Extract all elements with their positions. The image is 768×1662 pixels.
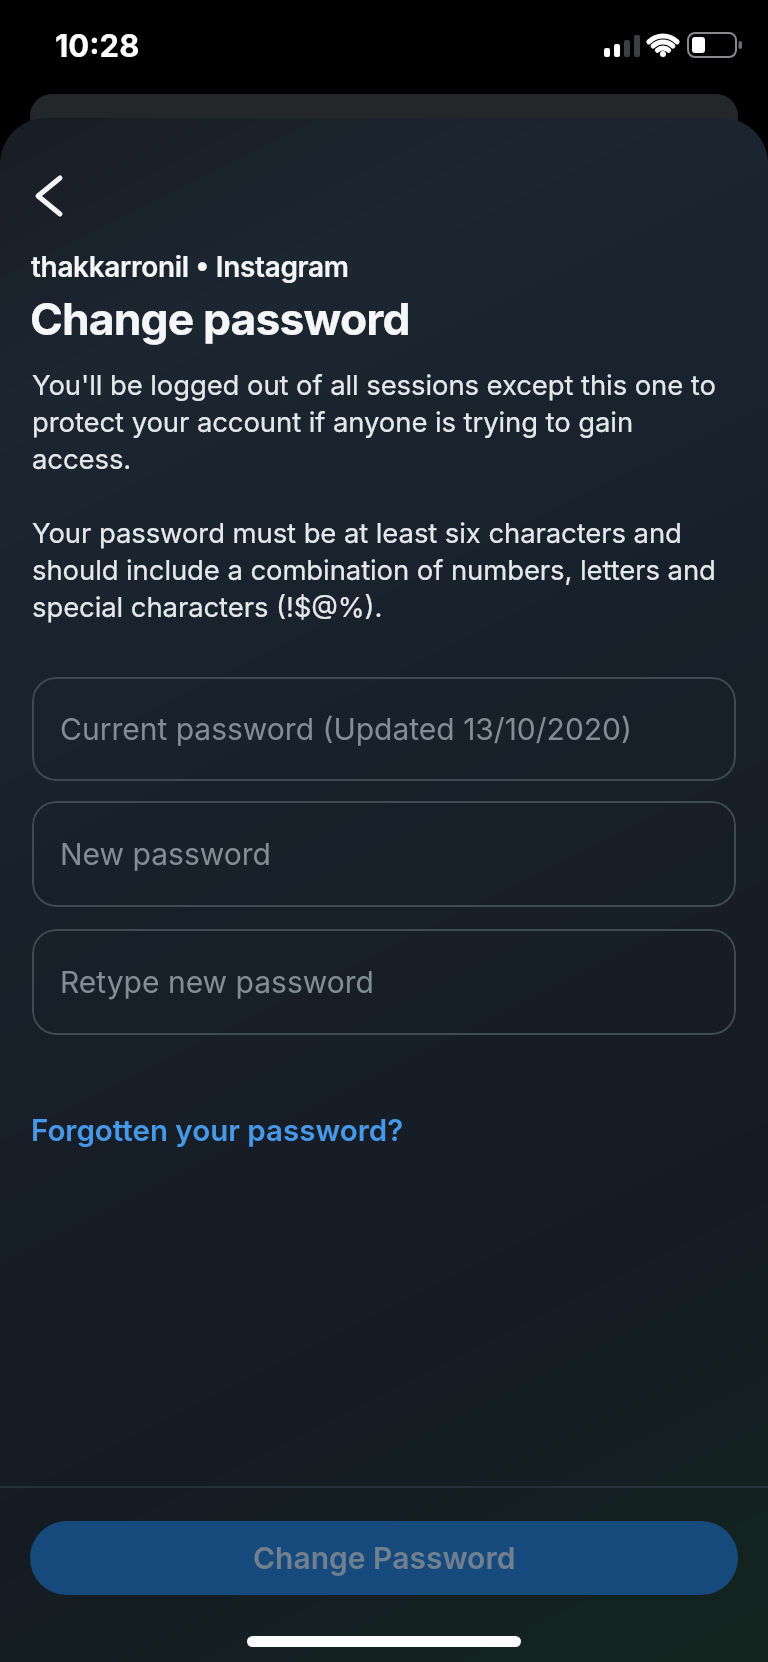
staticText: You'll be logged out of all sessions exc…: [32, 368, 738, 476]
button[interactable]: Current password (Updated 13/10/2020): [32, 677, 736, 781]
staticText: Current password (Updated 13/10/2020): [60, 711, 632, 747]
staticText: Retype new password: [60, 964, 374, 1000]
button[interactable]: Forgotten your password?: [31, 1112, 404, 1148]
staticText: Change Password: [253, 1540, 516, 1576]
button[interactable]: New password: [32, 801, 736, 907]
staticText: New password: [60, 836, 271, 872]
button[interactable]: Retype new password: [32, 929, 736, 1035]
staticText: thakkarronil • Instagram: [31, 250, 349, 284]
staticText: 10:28: [55, 27, 140, 65]
button[interactable]: [24, 164, 80, 228]
staticText: Forgotten your password?: [31, 1112, 404, 1148]
button[interactable]: Change Password: [30, 1521, 738, 1595]
staticText: Change password: [30, 292, 410, 346]
staticText: Your password must be at least six chara…: [32, 516, 742, 624]
